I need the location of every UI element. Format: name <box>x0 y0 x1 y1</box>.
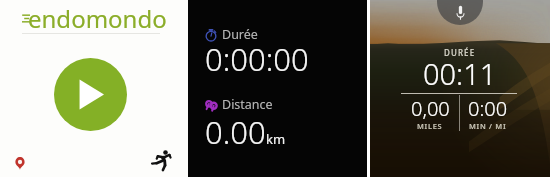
staticText: endomondo <box>28 2 167 35</box>
staticText: 0:00 <box>468 95 508 122</box>
staticText: 0:00:00 <box>205 38 309 80</box>
staticText: Durée <box>222 26 258 43</box>
staticText: 0,00 <box>411 95 450 122</box>
staticText: 0.00 <box>205 111 266 153</box>
button[interactable]: Sport type <box>148 148 174 174</box>
button[interactable]: Location <box>9 152 31 174</box>
button[interactable]: Start <box>54 58 127 131</box>
staticText: Distance <box>222 96 273 113</box>
staticText: MILES <box>417 121 443 131</box>
staticText: DURÉE <box>444 47 476 58</box>
staticText: MIN / MI <box>469 121 507 131</box>
button[interactable]: Voice command <box>437 0 483 25</box>
staticText: km <box>266 130 286 148</box>
staticText: 00:11 <box>423 54 497 93</box>
